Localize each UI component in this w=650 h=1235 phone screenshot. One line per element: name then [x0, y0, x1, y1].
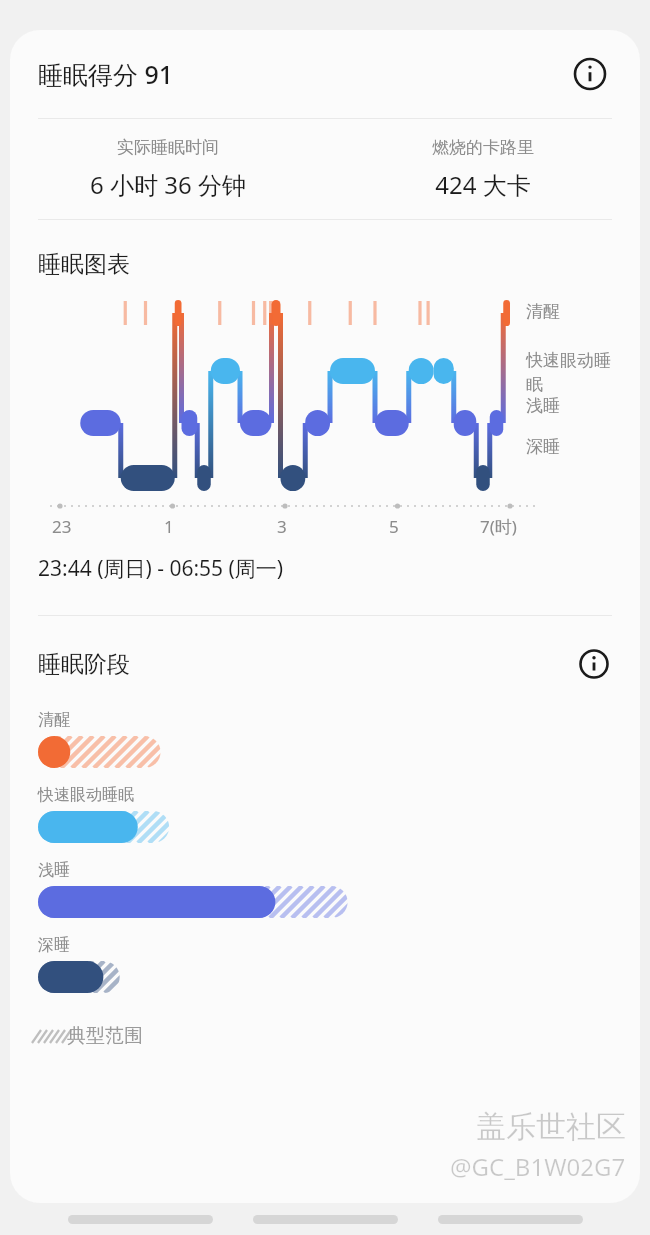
button[interactable]: 关于睡眠阶段 [572, 642, 616, 686]
staticText: 深睡 [38, 935, 70, 955]
staticText: 燃烧的卡路里 [432, 137, 534, 158]
staticText: 睡眠图表 [38, 250, 130, 279]
staticText: 睡眠阶段 [38, 650, 130, 679]
staticText: 深睡 [526, 436, 560, 457]
staticText: 快速眼动睡眠 [38, 785, 134, 805]
staticText: 实际睡眠时间 [117, 137, 219, 158]
staticText: 424 大卡 [435, 168, 531, 201]
button[interactable]: 快速眼动睡眠 [38, 785, 640, 844]
staticText: 浅睡 [38, 860, 70, 880]
staticText: 浅睡 [526, 395, 560, 416]
button[interactable]: 关于睡眠得分 [568, 52, 612, 96]
button[interactable]: 深睡 [38, 935, 640, 994]
staticText: 盖乐世社区 [476, 1108, 626, 1146]
staticText: 6 小时 36 分钟 [90, 168, 246, 201]
staticText: 5 [389, 515, 399, 538]
staticText: 23:44 (周日) - 06:55 (周一) [38, 554, 284, 583]
staticText: 7(时) [480, 515, 517, 538]
staticText: 睡眠得分 91 [38, 57, 174, 91]
staticText: @GC_B1W02G7 [450, 1150, 626, 1183]
staticText: 清醒 [526, 301, 560, 322]
staticText: 典型范围 [67, 1024, 143, 1048]
staticText: 快速眼动睡 眠 [526, 350, 611, 395]
button[interactable]: 清醒 [38, 710, 640, 769]
staticText: 1 [164, 515, 174, 538]
staticText: 23 [52, 515, 72, 538]
staticText: 3 [277, 515, 287, 538]
button[interactable]: 浅睡 [38, 860, 640, 919]
staticText: 清醒 [38, 710, 70, 730]
